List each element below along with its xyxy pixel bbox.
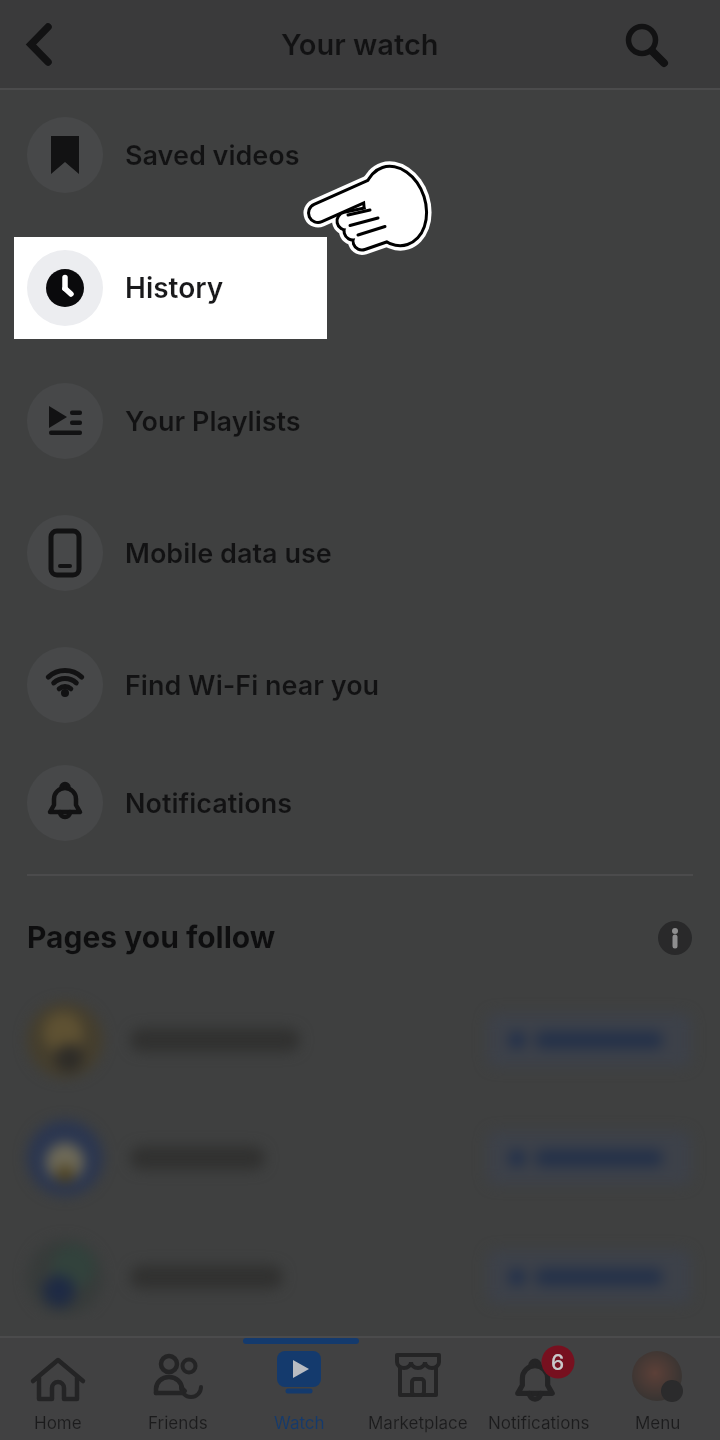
button[interactable] [612,10,676,74]
staticText: Notifications [488,1413,590,1434]
button[interactable]: 6 [474,1345,604,1440]
button[interactable]: Find Wi-Fi near you [0,630,720,740]
button[interactable]: Watch [234,1345,364,1440]
staticText: Friends [148,1413,208,1434]
button[interactable] [487,1013,691,1067]
button[interactable]: Your Playlists [0,366,720,476]
button[interactable] [487,1131,691,1185]
staticText: Pages you follow [27,919,276,955]
staticText: Watch [274,1413,325,1434]
staticText: Find Wi-Fi near you [125,669,380,702]
staticText: Marketplace [368,1413,468,1434]
button[interactable]: Friends [113,1345,243,1440]
staticText: Home [34,1413,82,1434]
staticText: Your Playlists [125,405,301,438]
staticText: History [125,271,224,305]
button[interactable] [487,1250,691,1304]
staticText: Saved videos [125,139,300,172]
button[interactable]: Notifications [0,748,720,858]
staticText: Notifications [125,787,293,820]
staticText: Mobile data use [125,537,332,570]
button[interactable]: Mobile data use [0,498,720,608]
button[interactable] [655,918,695,958]
button[interactable]: Marketplace [353,1345,483,1440]
button[interactable]: Home [0,1345,123,1440]
staticText: 6 [551,1350,565,1375]
button[interactable] [16,14,76,74]
staticText: Menu [635,1413,681,1434]
staticText: Your watch [281,27,439,62]
button[interactable]: Saved videos [0,100,720,210]
button[interactable]: Menu [593,1345,720,1440]
button[interactable]: History [14,237,327,339]
